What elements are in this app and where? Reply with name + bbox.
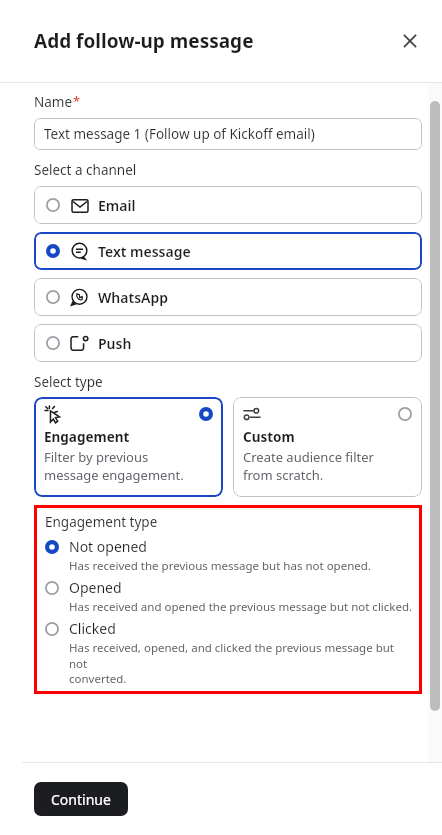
staticText: Create audience filter from scratch. bbox=[243, 448, 374, 484]
staticText: Clicked bbox=[69, 619, 116, 638]
button[interactable]: Text message bbox=[34, 232, 422, 270]
staticText: Not opened bbox=[69, 537, 147, 556]
staticText: Has received and opened the previous mes… bbox=[69, 599, 413, 615]
button[interactable]: Not opened bbox=[45, 537, 414, 574]
staticText: Add follow-up message bbox=[34, 28, 254, 54]
button[interactable]: Close bbox=[392, 23, 428, 59]
staticText: Has received, opened, and clicked the pr… bbox=[69, 640, 414, 686]
button[interactable]: Opened bbox=[45, 578, 414, 615]
button[interactable]: Email bbox=[34, 186, 422, 224]
staticText: Has received the previous message but ha… bbox=[69, 558, 371, 574]
staticText: * bbox=[73, 92, 81, 110]
staticText: Custom bbox=[243, 428, 295, 446]
button[interactable]: Text message 1 (Follow up of Kickoff ema… bbox=[34, 118, 422, 150]
staticText: Engagement bbox=[44, 428, 130, 446]
button[interactable]: Custom bbox=[233, 397, 422, 497]
staticText: Push bbox=[98, 334, 132, 353]
staticText: Text message bbox=[98, 242, 191, 261]
staticText: Name bbox=[34, 93, 73, 111]
staticText: Email bbox=[98, 196, 136, 215]
button[interactable]: Clicked bbox=[45, 619, 414, 686]
staticText: Filter by previous message engagement. bbox=[44, 448, 184, 484]
button[interactable]: Continue bbox=[34, 782, 128, 816]
button[interactable]: Engagement bbox=[34, 397, 223, 497]
staticText: Engagement type bbox=[45, 513, 158, 531]
staticText: WhatsApp bbox=[98, 288, 168, 307]
staticText: Continue bbox=[51, 790, 111, 809]
button[interactable]: Push bbox=[34, 324, 422, 362]
button[interactable]: WhatsApp bbox=[34, 278, 422, 316]
staticText: Select a channel bbox=[34, 161, 137, 179]
staticText: Opened bbox=[69, 578, 122, 597]
staticText: Text message 1 (Follow up of Kickoff ema… bbox=[44, 125, 315, 143]
staticText: Select type bbox=[34, 373, 103, 391]
